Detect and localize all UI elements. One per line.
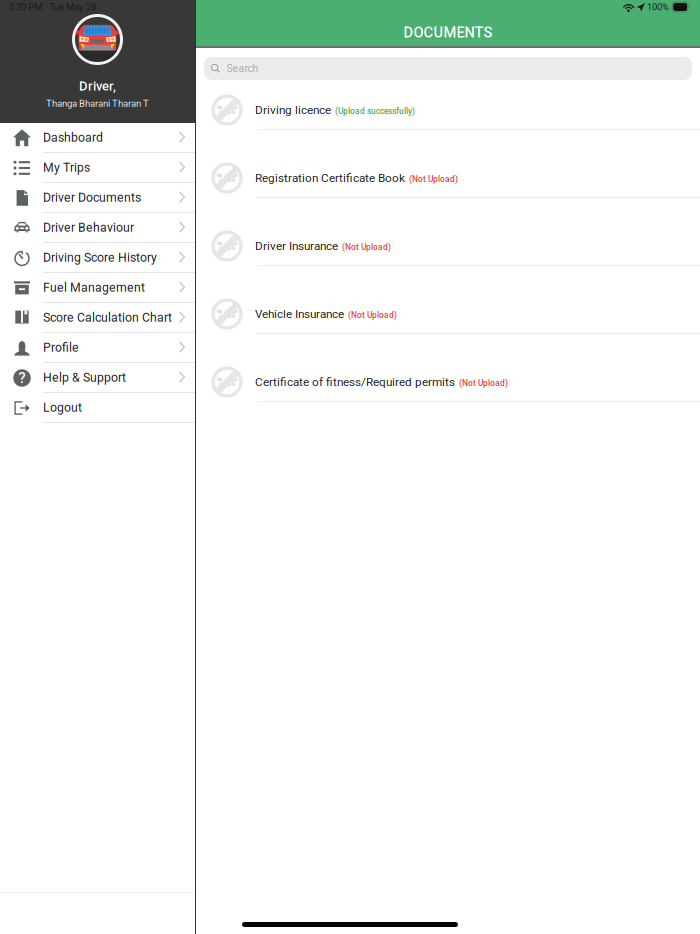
staticText: Tue May 28 [49,1,96,13]
button[interactable]: Logout [0,393,195,423]
staticText: available [219,314,235,319]
button[interactable]: Score Calculation Chart [0,303,195,333]
staticText: Search [226,62,258,75]
button[interactable]: Profile [0,333,195,363]
button[interactable]: Driving Score History [0,243,195,273]
staticText: Driving licence [255,103,331,117]
button[interactable]: Driver Documents [0,183,195,213]
staticText: Score Calculation Chart [43,310,172,325]
staticText: 5:20 PM [9,1,42,13]
staticText: (Not Upload) [459,378,508,388]
button[interactable]: No Image [196,363,700,431]
staticText: No Image [217,105,237,110]
staticText: (Not Upload) [342,242,391,252]
staticText: (Not Upload) [409,174,458,184]
staticText: Fuel Management [43,280,145,295]
staticText: (Upload successfully) [335,106,415,116]
button[interactable]: No Image [196,227,700,295]
staticText: 100% [647,1,669,12]
staticText: available [219,382,235,387]
staticText: available [219,246,235,251]
button[interactable]: No Image [196,295,700,363]
staticText: Dashboard [43,130,103,145]
staticText: available [219,178,235,183]
button[interactable]: Fuel Management [0,273,195,303]
staticText: DOCUMENTS [403,24,492,41]
staticText: Driver Behaviour [43,220,134,235]
button[interactable]: No Image [196,159,700,227]
staticText: Driver Insurance [255,239,338,253]
staticText: Certificate of fitness/Required permits [255,375,455,389]
staticText: Profile [43,340,79,355]
staticText: ? [18,369,25,387]
staticText: (Not Upload) [348,310,397,320]
button[interactable]: No Image [196,91,700,159]
staticText: My Trips [43,160,90,175]
staticText: No Image [217,241,237,246]
staticText: Driver Documents [43,190,141,205]
staticText: available [219,110,235,115]
staticText: No Image [217,377,237,382]
button[interactable]: Driver Behaviour [0,213,195,243]
staticText: Vehicle Insurance [255,307,344,321]
staticText: Driving Score History [43,250,157,265]
staticText: Thanga Bharani Tharan T [46,98,149,109]
staticText: Driver, [79,78,116,94]
button[interactable]: Dashboard [0,123,195,153]
staticText: No Image [217,173,237,178]
staticText: Help & Support [43,370,126,385]
button[interactable]: ? [0,363,195,393]
staticText: No Image [217,309,237,314]
button[interactable]: My Trips [0,153,195,183]
staticText: Logout [43,400,82,415]
staticText: Registration Certificate Book [255,171,405,185]
